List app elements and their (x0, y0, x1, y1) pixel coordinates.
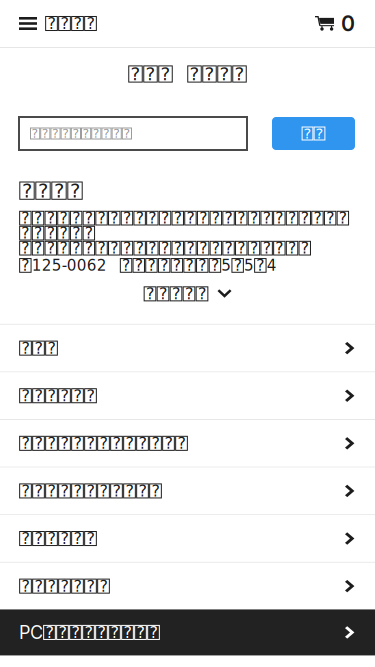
staticText: ? (110, 209, 118, 227)
staticText: ? (59, 239, 67, 257)
staticText: ? (21, 482, 29, 500)
staticText: ? (172, 285, 180, 303)
staticText: ? (185, 256, 193, 274)
staticText: ? (42, 126, 49, 141)
staticText: ? (34, 434, 42, 453)
button[interactable]: ? (0, 468, 375, 514)
staticText: ? (60, 529, 68, 548)
staticText: ? (21, 577, 29, 595)
staticText: ? (99, 434, 107, 453)
button[interactable]: ? (0, 515, 375, 562)
staticText: ? (47, 482, 55, 500)
staticText: ? (98, 239, 106, 257)
staticText: ? (288, 239, 296, 257)
staticText: ? (21, 256, 29, 274)
staticText: ? (177, 434, 185, 453)
staticText: ? (47, 386, 55, 405)
staticText: ? (34, 482, 42, 500)
staticText: ? (34, 224, 42, 242)
button[interactable]: ? (0, 420, 375, 467)
staticText: ? (186, 239, 194, 257)
staticText: ? (185, 285, 193, 303)
staticText: ? (85, 239, 93, 257)
staticText: ? (112, 482, 120, 500)
staticText: ? (86, 482, 94, 500)
staticText: ? (174, 209, 182, 227)
staticText: ? (339, 209, 347, 227)
staticText: ? (212, 239, 220, 257)
staticText: PC (19, 621, 43, 643)
button[interactable]: ? (0, 372, 375, 419)
staticText: ? (97, 623, 105, 642)
staticText: ? (151, 482, 159, 500)
button[interactable]: ? (272, 117, 355, 150)
staticText: ? (34, 386, 42, 405)
staticText: ? (72, 239, 80, 257)
staticText: ? (174, 239, 182, 257)
staticText: ? (198, 256, 206, 274)
staticText: ? (224, 239, 232, 257)
staticText: ? (148, 239, 156, 257)
button[interactable]: ? (0, 325, 375, 371)
staticText: ? (73, 529, 81, 548)
staticText: ? (83, 126, 90, 141)
staticText: ? (21, 339, 29, 357)
staticText: 5 (221, 257, 231, 274)
staticText: 5 (244, 257, 254, 274)
staticText: ? (73, 14, 81, 33)
staticText: ? (62, 126, 69, 141)
button[interactable]: ? (0, 0, 97, 47)
staticText: ? (151, 434, 159, 453)
staticText: ? (70, 179, 80, 202)
staticText: ? (71, 623, 79, 642)
staticText: ? (34, 529, 42, 548)
staticText: ? (34, 239, 42, 257)
staticText: ? (275, 209, 283, 227)
staticText: ? (21, 224, 29, 242)
staticText: ? (38, 179, 48, 202)
staticText: ? (86, 529, 94, 548)
button[interactable]: 0 (315, 0, 375, 47)
staticText: ? (313, 209, 321, 227)
button[interactable]: ? (0, 276, 375, 324)
staticText: ? (159, 285, 167, 303)
staticText: ? (198, 285, 206, 303)
staticText: ? (135, 256, 143, 274)
staticText: ? (250, 209, 258, 227)
staticText: ? (45, 623, 53, 642)
staticText: ? (199, 239, 207, 257)
staticText: ? (113, 126, 120, 141)
staticText: ? (47, 339, 55, 357)
staticText: ? (237, 239, 245, 257)
staticText: ? (93, 126, 100, 141)
button[interactable]: PC (0, 609, 375, 655)
staticText: ? (160, 63, 170, 85)
staticText: ? (86, 577, 94, 595)
staticText: ? (161, 239, 169, 257)
staticText: ? (123, 239, 131, 257)
staticText: ? (73, 386, 81, 405)
staticText: ? (173, 256, 181, 274)
staticText: ? (136, 239, 144, 257)
staticText: ? (85, 209, 93, 227)
staticText: ? (59, 209, 67, 227)
staticText: ? (99, 577, 107, 595)
staticText: ? (72, 224, 80, 242)
staticText: ? (72, 209, 80, 227)
staticText: ? (99, 482, 107, 500)
staticText: ? (52, 126, 59, 141)
staticText: ? (60, 14, 68, 33)
staticText: ? (123, 623, 131, 642)
staticText: ? (32, 126, 39, 141)
staticText: ? (34, 339, 42, 357)
staticText: ? (60, 386, 68, 405)
staticText: ? (219, 63, 229, 85)
staticText: ? (103, 126, 110, 141)
staticText: ? (47, 434, 55, 453)
staticText: ? (60, 577, 68, 595)
staticText: ? (98, 209, 106, 227)
staticText: ? (21, 386, 29, 405)
button[interactable]: ? (0, 563, 375, 609)
staticText: ? (85, 224, 93, 242)
staticText: ? (73, 482, 81, 500)
